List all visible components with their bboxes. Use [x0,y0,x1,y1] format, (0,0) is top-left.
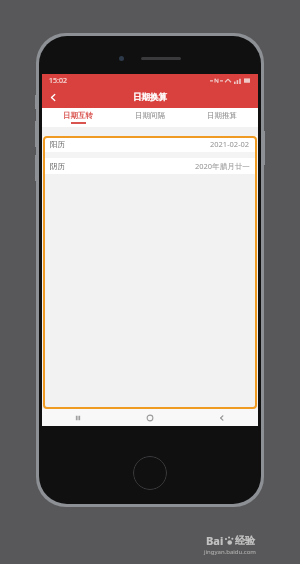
staticText: 日期推算 [207,111,237,120]
staticText: 15:02 [49,76,67,86]
button[interactable]: 阳历 [43,136,257,152]
staticText: 经验 [235,534,255,547]
staticText: 阳历 [50,140,65,149]
staticText: 阴历 [50,162,65,171]
staticText: Bai [206,533,224,548]
button[interactable]: Recent apps [42,409,114,426]
staticText: jingyan.baidu.com [204,548,256,556]
button[interactable]: 日期互转 [42,108,114,127]
button[interactable]: Back [186,409,258,426]
staticText: 日期互转 [63,111,93,120]
button[interactable]: 阴历 [43,158,257,174]
button[interactable]: 日期间隔 [114,108,186,127]
button[interactable]: Back [42,87,64,108]
staticText: 日期间隔 [135,111,165,120]
button[interactable]: 日期推算 [186,108,258,127]
button[interactable]: Home [114,409,186,426]
staticText: 2021-02-02 [210,139,250,149]
staticText: 2020年腊月廿一 [195,161,250,171]
staticText: 日期换算 [133,92,167,103]
